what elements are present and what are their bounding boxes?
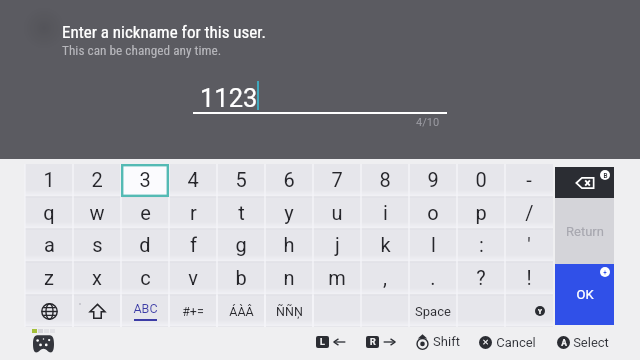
- button[interactable]: 8: [361, 164, 409, 197]
- button[interactable]: n: [265, 262, 313, 295]
- button[interactable]: ABC: [121, 295, 169, 327]
- button[interactable]: ,: [361, 262, 409, 295]
- button[interactable]: w: [73, 197, 121, 229]
- staticText: ÁÀÂ: [229, 304, 254, 319]
- button[interactable]: u: [313, 197, 361, 229]
- button[interactable]: Backspace: [555, 167, 614, 198]
- button[interactable]: a: [25, 229, 73, 262]
- button[interactable]: 1: [25, 164, 73, 197]
- button[interactable]: j: [313, 229, 361, 262]
- button[interactable]: 0: [457, 164, 505, 197]
- staticText: 0: [475, 168, 487, 191]
- button[interactable]: z: [25, 262, 73, 295]
- staticText: R: [370, 337, 376, 348]
- button[interactable]: R button: [366, 336, 379, 348]
- staticText: e: [140, 201, 151, 224]
- staticText: x: [92, 266, 102, 289]
- button[interactable]: Return: [555, 198, 614, 264]
- staticText: Enter a nickname for this user.: [62, 22, 266, 42]
- staticText: 6: [283, 168, 295, 191]
- staticText: Space: [415, 304, 451, 319]
- button[interactable]: l: [409, 229, 457, 262]
- staticText: a: [44, 233, 55, 256]
- button[interactable]: o: [409, 197, 457, 229]
- button[interactable]: ÁÀÂ: [217, 295, 265, 327]
- button[interactable]: .: [409, 262, 457, 295]
- staticText: l: [431, 233, 436, 256]
- staticText: m: [328, 266, 346, 289]
- staticText: d: [139, 233, 151, 256]
- button[interactable]: m: [313, 262, 361, 295]
- button[interactable]: Space: [313, 295, 553, 327]
- button[interactable]: OK: [555, 264, 614, 325]
- button[interactable]: Language: [25, 295, 73, 327]
- button[interactable]: p: [457, 197, 505, 229]
- button[interactable]: :: [457, 229, 505, 262]
- button[interactable]: ?: [457, 262, 505, 295]
- staticText: 1: [43, 168, 55, 191]
- staticText: 9: [427, 168, 439, 191]
- staticText: :: [479, 233, 484, 256]
- staticText: B: [603, 172, 608, 179]
- staticText: Cancel: [496, 335, 536, 350]
- staticText: h: [283, 233, 295, 256]
- button[interactable]: -: [505, 164, 553, 197]
- button[interactable]: #+=: [169, 295, 217, 327]
- button[interactable]: g: [217, 229, 265, 262]
- button[interactable]: d: [121, 229, 169, 262]
- staticText: 1123: [200, 83, 258, 113]
- button[interactable]: v: [169, 262, 217, 295]
- staticText: 2: [91, 168, 103, 191]
- button[interactable]: f: [169, 229, 217, 262]
- staticText: ': [527, 233, 531, 256]
- staticText: 4: [187, 168, 199, 191]
- button[interactable]: 7: [313, 164, 361, 197]
- staticText: f: [190, 233, 197, 256]
- button[interactable]: q: [25, 197, 73, 229]
- button[interactable]: 6: [265, 164, 313, 197]
- staticText: ÑÑŅ: [276, 304, 303, 319]
- staticText: i: [383, 201, 388, 224]
- staticText: 3: [139, 168, 151, 191]
- other: Move left: [333, 336, 346, 348]
- button[interactable]: ÑÑŅ: [265, 295, 313, 327]
- staticText: z: [44, 266, 54, 289]
- staticText: v: [188, 266, 198, 289]
- staticText: A: [561, 338, 567, 348]
- button[interactable]: !: [505, 262, 553, 295]
- button[interactable]: 4: [169, 164, 217, 197]
- button[interactable]: 5: [217, 164, 265, 197]
- button[interactable]: e: [121, 197, 169, 229]
- staticText: #+=: [182, 304, 204, 319]
- staticText: Return: [566, 224, 604, 239]
- staticText: b: [235, 266, 247, 289]
- button[interactable]: h: [265, 229, 313, 262]
- staticText: ABC: [133, 301, 158, 316]
- button[interactable]: A: [557, 335, 609, 350]
- button[interactable]: ': [505, 229, 553, 262]
- staticText: ✕: [482, 338, 489, 347]
- button[interactable]: y: [265, 197, 313, 229]
- staticText: c: [140, 266, 151, 289]
- button[interactable]: L button: [316, 336, 329, 348]
- button[interactable]: 3: [121, 164, 169, 197]
- button[interactable]: c: [121, 262, 169, 295]
- button[interactable]: k: [361, 229, 409, 262]
- staticText: ,: [383, 266, 387, 289]
- staticText: Shift: [433, 334, 460, 349]
- button[interactable]: Shift: [416, 334, 460, 349]
- staticText: ?: [476, 266, 486, 289]
- button[interactable]: 9: [409, 164, 457, 197]
- button[interactable]: Shift: [73, 295, 121, 327]
- button[interactable]: t: [217, 197, 265, 229]
- button[interactable]: x: [73, 262, 121, 295]
- button[interactable]: b: [217, 262, 265, 295]
- button[interactable]: /: [505, 197, 553, 229]
- button[interactable]: i: [361, 197, 409, 229]
- staticText: r: [190, 201, 197, 224]
- button[interactable]: 2: [73, 164, 121, 197]
- button[interactable]: r: [169, 197, 217, 229]
- staticText: y: [284, 201, 294, 224]
- button[interactable]: ✕: [479, 335, 536, 350]
- button[interactable]: s: [73, 229, 121, 262]
